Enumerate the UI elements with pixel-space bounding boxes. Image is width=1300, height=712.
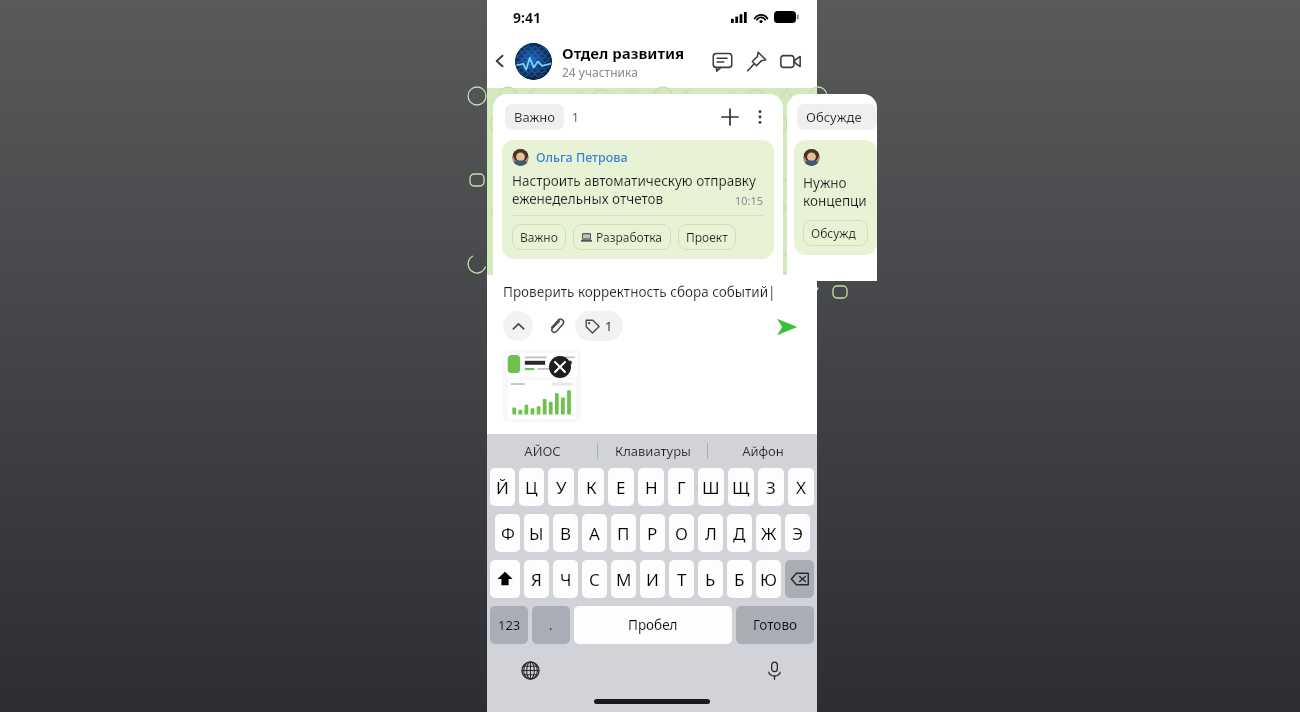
staticText: Обсуждение bbox=[806, 108, 868, 126]
staticText: С bbox=[589, 568, 600, 591]
staticText: К bbox=[586, 476, 597, 499]
button[interactable]: 1 bbox=[575, 311, 623, 341]
staticText: 1 bbox=[605, 318, 613, 335]
staticText: 1 bbox=[572, 109, 579, 125]
button[interactable]: Ы bbox=[524, 514, 549, 552]
staticText: 9:41 bbox=[513, 8, 541, 27]
button[interactable]: Г bbox=[668, 468, 694, 506]
staticText: Д bbox=[733, 522, 746, 545]
button[interactable]: АЙОС bbox=[487, 434, 597, 468]
button[interactable]: П bbox=[611, 514, 636, 552]
button[interactable]: Ю bbox=[756, 560, 781, 598]
staticText: Клавиатуры bbox=[615, 442, 691, 460]
button[interactable]: Я bbox=[524, 560, 549, 598]
staticText: Л bbox=[705, 522, 717, 545]
staticText: П bbox=[617, 522, 630, 545]
button[interactable]: Ь bbox=[698, 560, 723, 598]
button[interactable]: Пробел bbox=[574, 606, 732, 644]
button[interactable]: Л bbox=[698, 514, 723, 552]
staticText: 24 участника bbox=[562, 64, 638, 80]
button[interactable]: Й bbox=[490, 468, 515, 506]
button[interactable]: Проект bbox=[678, 224, 736, 250]
button[interactable]: Н bbox=[638, 468, 664, 506]
button[interactable]: С bbox=[582, 560, 607, 598]
button[interactable]: Р bbox=[640, 514, 665, 552]
button[interactable]: 123 bbox=[490, 606, 528, 644]
button[interactable]: Change keyboard bbox=[515, 655, 545, 685]
staticText: Ы bbox=[529, 522, 544, 545]
staticText: Ольга Петрова bbox=[536, 149, 628, 166]
button[interactable] bbox=[503, 350, 581, 422]
button[interactable]: О bbox=[669, 514, 694, 552]
button[interactable]: Важно bbox=[505, 104, 564, 130]
button[interactable]: Add bbox=[717, 104, 743, 130]
button[interactable]: Chat info bbox=[705, 44, 739, 78]
staticText: Пробел bbox=[628, 616, 678, 634]
button[interactable]: Щ bbox=[728, 468, 754, 506]
staticText: Е bbox=[616, 476, 626, 499]
button[interactable]: Pin bbox=[739, 44, 773, 78]
staticText: Отдел развития bbox=[562, 43, 685, 63]
button[interactable]: Клавиатуры bbox=[598, 434, 707, 468]
button[interactable]: Х bbox=[788, 468, 814, 506]
staticText: Н bbox=[645, 476, 658, 499]
button[interactable]: Shift bbox=[490, 560, 520, 598]
staticText: Й bbox=[496, 476, 509, 499]
staticText: Нужно обсудить bbox=[803, 174, 868, 192]
button[interactable]: More options bbox=[749, 106, 771, 128]
button[interactable]: Ф bbox=[495, 514, 520, 552]
staticText: Проверить корректность сбора событий| bbox=[503, 283, 776, 301]
button[interactable]: Expand bbox=[503, 311, 533, 341]
button[interactable]: М bbox=[611, 560, 636, 598]
staticText: Обсуждение bbox=[811, 225, 860, 241]
staticText: концепцию релиза bbox=[803, 192, 868, 210]
button[interactable]: Отдел развития bbox=[562, 43, 705, 80]
button[interactable]: Важно bbox=[493, 94, 783, 275]
staticText: Т bbox=[677, 568, 687, 591]
button[interactable]: Remove attachment bbox=[549, 356, 571, 378]
button[interactable]: Готово bbox=[736, 606, 814, 644]
staticText: . bbox=[549, 616, 553, 634]
button[interactable]: Б bbox=[727, 560, 752, 598]
button[interactable]: Ш bbox=[698, 468, 724, 506]
button[interactable]: Ч bbox=[553, 560, 578, 598]
button[interactable]: Э bbox=[785, 514, 810, 552]
button[interactable]: Ц bbox=[519, 468, 544, 506]
staticText: 123 bbox=[498, 616, 521, 634]
button[interactable]: Video call bbox=[773, 44, 807, 78]
staticText: В bbox=[560, 522, 572, 545]
button[interactable]: В bbox=[553, 514, 578, 552]
button[interactable]: . bbox=[532, 606, 570, 644]
button[interactable]: Т bbox=[669, 560, 694, 598]
staticText: Ю bbox=[760, 568, 777, 591]
button[interactable]: Важно bbox=[512, 224, 566, 250]
button[interactable]: А bbox=[582, 514, 607, 552]
button[interactable]: Attach file bbox=[541, 311, 571, 341]
button[interactable]: И bbox=[640, 560, 665, 598]
button[interactable]: Д bbox=[727, 514, 752, 552]
staticText: Проект bbox=[686, 229, 728, 245]
staticText: Б bbox=[734, 568, 745, 591]
button[interactable]: Send bbox=[771, 311, 803, 343]
button[interactable]: К bbox=[578, 468, 604, 506]
staticText: Ф bbox=[501, 522, 515, 545]
staticText: Ч bbox=[560, 568, 572, 591]
staticText: Ж bbox=[761, 522, 777, 545]
button[interactable]: Backspace bbox=[785, 560, 814, 598]
staticText: Ц bbox=[525, 476, 538, 499]
button[interactable]: Back bbox=[487, 34, 513, 88]
button[interactable]: Е bbox=[608, 468, 634, 506]
button[interactable]: У bbox=[548, 468, 574, 506]
button[interactable]: Dictate bbox=[759, 655, 789, 685]
staticText: Важно bbox=[520, 229, 558, 245]
button[interactable]: З bbox=[758, 468, 784, 506]
staticText: Айфон bbox=[742, 442, 784, 460]
staticText: Настроить автоматическую отправку bbox=[512, 172, 756, 190]
button[interactable]: Айфон bbox=[708, 434, 817, 468]
staticText: 10:15 bbox=[735, 193, 764, 208]
staticText: еженедельных отчетов bbox=[512, 190, 664, 208]
button[interactable]: Ж bbox=[756, 514, 781, 552]
button[interactable]: Разработка bbox=[573, 224, 671, 250]
staticText: Ь bbox=[705, 568, 716, 591]
button[interactable]: Ольга Петрова bbox=[502, 140, 774, 259]
